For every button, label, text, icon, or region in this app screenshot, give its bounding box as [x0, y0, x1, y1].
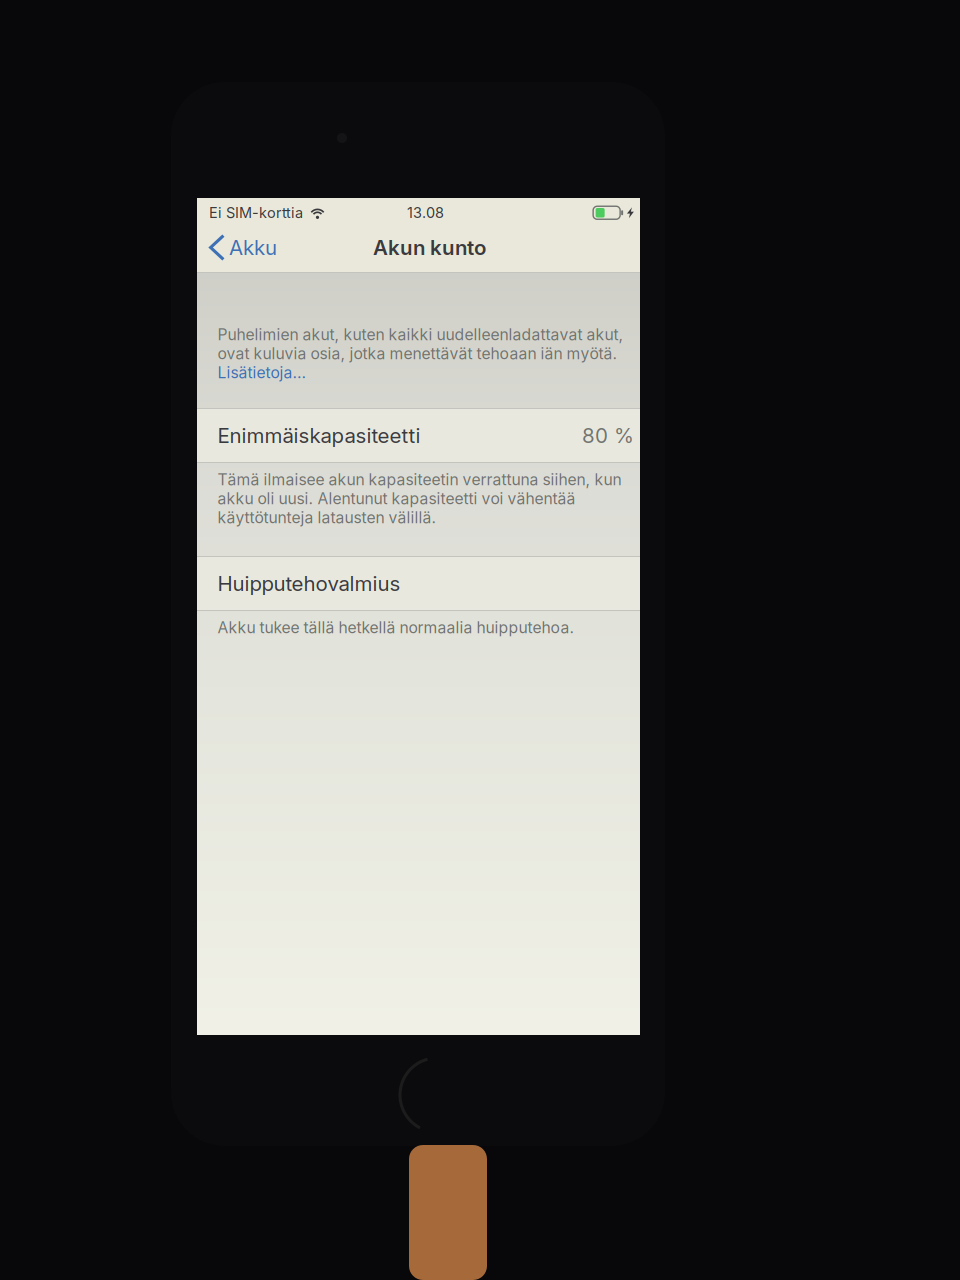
staticText: akku oli uusi. Alentunut kapasiteetti vo…: [217, 489, 575, 508]
staticText: Tämä ilmaisee akun kapasiteetin verrattu…: [217, 470, 621, 489]
staticText: Akun kunto: [373, 235, 486, 260]
staticText: 13.08: [407, 204, 444, 221]
staticText: Akku tukee tällä hetkellä normaalia huip…: [217, 618, 574, 637]
button[interactable]: Lisätietoja…: [197, 363, 640, 382]
staticText: Ei SIM-korttia: [209, 204, 303, 221]
staticText: Puhelimien akut, kuten kaikki uudelleenl…: [217, 325, 623, 344]
staticText: Huipputehovalmius: [217, 571, 400, 596]
button[interactable]: Huipputehovalmius: [197, 557, 640, 610]
staticText: Akku: [229, 235, 277, 260]
staticText: 80 %: [582, 423, 634, 448]
staticText: käyttötunteja latausten välillä.: [217, 508, 436, 527]
staticText: Enimmäiskapasiteetti: [217, 423, 420, 448]
button[interactable]: Akku: [197, 222, 287, 272]
staticText: Lisätietoja…: [217, 363, 306, 382]
staticText: ovat kuluvia osia, jotka menettävät teho…: [217, 344, 617, 363]
button[interactable]: Enimmäiskapasiteetti: [197, 409, 640, 462]
